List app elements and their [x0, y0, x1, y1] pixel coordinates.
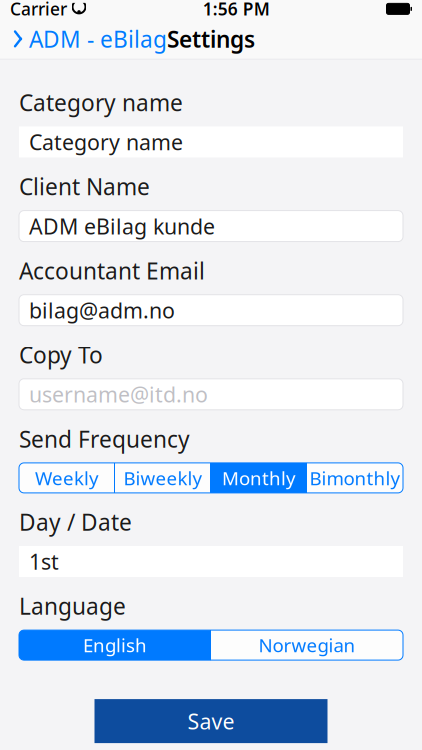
staticText: Language: [19, 591, 126, 621]
staticText: Weekly: [35, 465, 99, 490]
staticText: Settings: [167, 24, 255, 54]
staticText: Day / Date: [19, 507, 132, 537]
button[interactable]: username@itd.no: [19, 379, 403, 410]
staticText: Bimonthly: [309, 465, 400, 490]
staticText: Carrier: [10, 0, 67, 20]
staticText: Send Frequency: [19, 424, 190, 454]
staticText: Norwegian: [258, 633, 355, 657]
button[interactable]: Category name: [19, 126, 403, 157]
staticText: Category name: [29, 128, 183, 156]
staticText: 1:56 PM: [203, 0, 270, 20]
staticText: Save: [187, 707, 234, 735]
staticText: Biweekly: [123, 465, 202, 490]
staticText: bilag@adm.no: [29, 296, 175, 324]
button[interactable]: ADM - eBilag: [0, 18, 167, 60]
button[interactable]: Save: [94, 699, 327, 743]
staticText: username@itd.no: [29, 380, 208, 408]
button[interactable]: Norwegian: [211, 630, 403, 660]
staticText: Copy To: [19, 340, 103, 370]
staticText: ADM - eBilag: [29, 24, 167, 54]
staticText: 1st: [29, 547, 59, 576]
staticText: English: [83, 633, 147, 657]
button[interactable]: Biweekly: [115, 463, 211, 493]
button[interactable]: Bimonthly: [307, 463, 403, 493]
button[interactable]: ADM eBilag kunde: [19, 211, 403, 242]
button[interactable]: 1st: [19, 546, 403, 577]
button[interactable]: Monthly: [211, 463, 307, 493]
staticText: ADM eBilag kunde: [29, 212, 215, 240]
button[interactable]: Weekly: [19, 463, 115, 493]
button[interactable]: bilag@adm.no: [19, 295, 403, 326]
button[interactable]: English: [19, 630, 211, 660]
staticText: Monthly: [222, 465, 296, 490]
staticText: Accountant Email: [19, 256, 205, 286]
staticText: Category name: [19, 87, 183, 117]
staticText: Client Name: [19, 171, 150, 202]
